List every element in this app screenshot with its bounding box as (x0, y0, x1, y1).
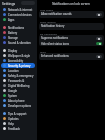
button[interactable]: Updates (1, 116, 35, 121)
button[interactable]: Security & privacy (1, 63, 35, 68)
staticText: Developer options (8, 104, 32, 108)
button[interactable]: Hide silent status icons (39, 41, 104, 46)
other: Allow notification sounds (96, 13, 102, 16)
button[interactable]: Network & internet (1, 7, 35, 12)
button[interactable]: Connected devices (1, 12, 35, 17)
button[interactable]: Notification history (39, 23, 104, 29)
button[interactable]: Wallpaper & style (1, 53, 35, 58)
button[interactable]: Apps (1, 17, 35, 22)
staticText: Settings (2, 1, 16, 6)
staticText: Apps (8, 18, 15, 22)
staticText: Do Not Disturb (40, 32, 105, 35)
button[interactable]: Feedback (1, 126, 35, 131)
staticText: Location (8, 69, 19, 73)
staticText: Notifications on lock screen (52, 2, 90, 6)
button[interactable]: Safety & emergency (1, 73, 35, 78)
button[interactable]: Digital Wellbeing (1, 83, 35, 88)
staticText: Storage (8, 36, 18, 40)
button[interactable]: Developer options (1, 103, 35, 108)
staticText: Notifications (8, 26, 24, 30)
button[interactable]: Sound & vibration (1, 40, 35, 45)
staticText: Network & internet (8, 8, 33, 12)
staticText: More (40, 50, 105, 53)
staticText: Feedback (8, 127, 20, 131)
button[interactable]: About phone (1, 98, 35, 103)
button[interactable]: Display (1, 48, 35, 53)
staticText: Wallpaper & style (8, 54, 30, 58)
staticText: Enhanced notifications (41, 54, 96, 58)
other: Enhanced notifications (96, 55, 102, 58)
staticText: Allow notification sounds (41, 12, 96, 16)
staticText: Accessibility (8, 59, 24, 63)
staticText: Updates (8, 117, 19, 121)
staticText: Battery (8, 31, 18, 35)
button[interactable]: Tips & support (1, 111, 35, 116)
staticText: Other options (40, 20, 105, 23)
button[interactable]: Suppress notifications (39, 35, 104, 41)
button[interactable]: Notifications (1, 25, 35, 30)
button[interactable]: Battery (1, 30, 35, 35)
staticText: Help (8, 122, 14, 126)
staticText: Security & privacy (8, 64, 31, 68)
button[interactable]: Help (1, 121, 35, 126)
other: Hide silent status icons (96, 42, 102, 45)
staticText: Notification history (41, 24, 102, 28)
button[interactable]: Search settings (21, 1, 35, 5)
button[interactable]: Google (1, 88, 35, 93)
staticText: About phone (8, 99, 25, 103)
other: Suppress notifications (96, 37, 102, 40)
button[interactable]: Storage (1, 35, 35, 40)
staticText: Passwords & accounts (8, 79, 35, 83)
staticText: Digital Wellbeing (8, 84, 30, 88)
button[interactable]: Accessibility (1, 58, 35, 63)
staticText: Suppress notifications (41, 36, 96, 40)
button[interactable]: Passwords & accounts (1, 78, 35, 83)
button[interactable]: Enhanced notifications (39, 53, 104, 59)
button[interactable]: Location (1, 68, 35, 73)
staticText: Tips & support (8, 112, 27, 116)
button[interactable]: System (1, 93, 35, 98)
staticText: Lock screen (40, 8, 105, 11)
button[interactable]: Allow notification sounds (39, 11, 104, 17)
staticText: Safety & emergency (8, 74, 34, 78)
staticText: Sound & vibration (8, 41, 31, 45)
staticText: Display (8, 49, 18, 53)
staticText: Google (8, 89, 18, 93)
staticText: Connected devices (8, 13, 32, 17)
staticText: Hide silent status icons (41, 42, 96, 46)
staticText: System (8, 94, 18, 98)
